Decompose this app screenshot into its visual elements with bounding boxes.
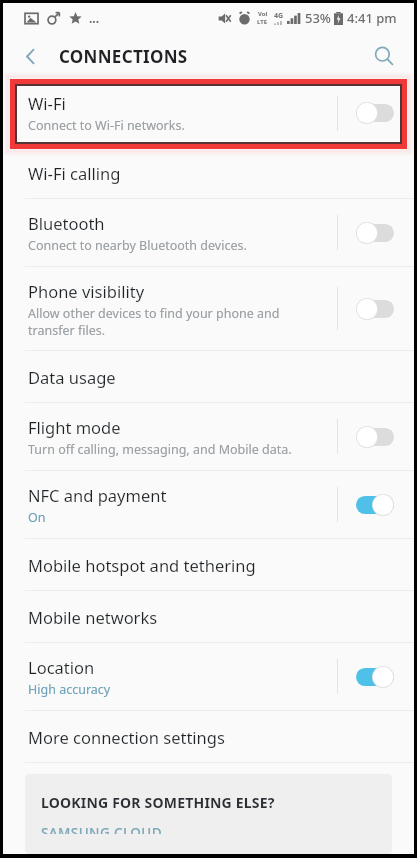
button[interactable]: Mobile networks bbox=[3, 591, 414, 642]
staticText: Location bbox=[28, 656, 95, 678]
button[interactable]: More connection settings bbox=[3, 711, 414, 762]
button[interactable]: Location bbox=[3, 643, 414, 710]
staticText: Flight mode bbox=[28, 416, 121, 438]
button[interactable]: Data usage bbox=[3, 351, 414, 402]
staticText: 4:41 pm bbox=[347, 9, 397, 27]
button[interactable]: Wi-Fi calling bbox=[3, 147, 414, 198]
staticText: Mobile networks bbox=[28, 606, 158, 628]
button[interactable]: Back bbox=[13, 39, 47, 73]
button[interactable]: LOOKING FOR SOMETHING ELSE? bbox=[25, 774, 392, 854]
button[interactable]: NFC and payment switch bbox=[356, 494, 394, 516]
staticText: Bluetooth bbox=[28, 212, 105, 234]
staticText: Wi-Fi calling bbox=[28, 162, 121, 184]
staticText: More connection settings bbox=[28, 726, 225, 748]
button[interactable]: Bluetooth bbox=[3, 199, 414, 266]
button[interactable]: Bluetooth switch bbox=[356, 222, 394, 244]
staticText: CONNECTIONS bbox=[59, 45, 188, 68]
button[interactable]: Wi-Fi switch bbox=[356, 102, 394, 124]
staticText: Data usage bbox=[28, 366, 116, 388]
staticText: Mobile hotspot and tethering bbox=[28, 554, 256, 576]
staticText: Wi-Fi bbox=[28, 92, 66, 114]
staticText: ... bbox=[89, 10, 100, 26]
button[interactable]: Phone visibility bbox=[3, 267, 414, 350]
staticText: LTE bbox=[257, 18, 268, 26]
staticText: Phone visibility bbox=[28, 280, 145, 302]
staticText: Allow other devices to find your phone a… bbox=[28, 305, 280, 338]
button[interactable]: Location switch bbox=[356, 666, 394, 688]
staticText: 4G bbox=[274, 11, 284, 21]
button[interactable]: Wi-Fi bbox=[3, 79, 414, 147]
staticText: Connect to Wi-Fi networks. bbox=[28, 117, 185, 134]
staticText: Turn off calling, messaging, and Mobile … bbox=[28, 441, 292, 458]
staticText: LOOKING FOR SOMETHING ELSE? bbox=[41, 793, 275, 812]
staticText: NFC and payment bbox=[28, 484, 167, 506]
staticText: On bbox=[28, 509, 46, 526]
staticText: 53% bbox=[305, 9, 331, 27]
staticText: Connect to nearby Bluetooth devices. bbox=[28, 237, 247, 254]
staticText: SAMSUNG CLOUD bbox=[41, 824, 162, 834]
button[interactable]: Mobile hotspot and tethering bbox=[3, 539, 414, 590]
staticText: Vol bbox=[258, 10, 268, 18]
button[interactable]: Flight mode switch bbox=[356, 426, 394, 448]
button[interactable]: Phone visibility switch bbox=[356, 298, 394, 320]
button[interactable]: Flight mode bbox=[3, 403, 414, 470]
staticText: High accuracy bbox=[28, 681, 111, 698]
button[interactable]: NFC and payment bbox=[3, 471, 414, 538]
button[interactable]: Search bbox=[366, 38, 402, 74]
